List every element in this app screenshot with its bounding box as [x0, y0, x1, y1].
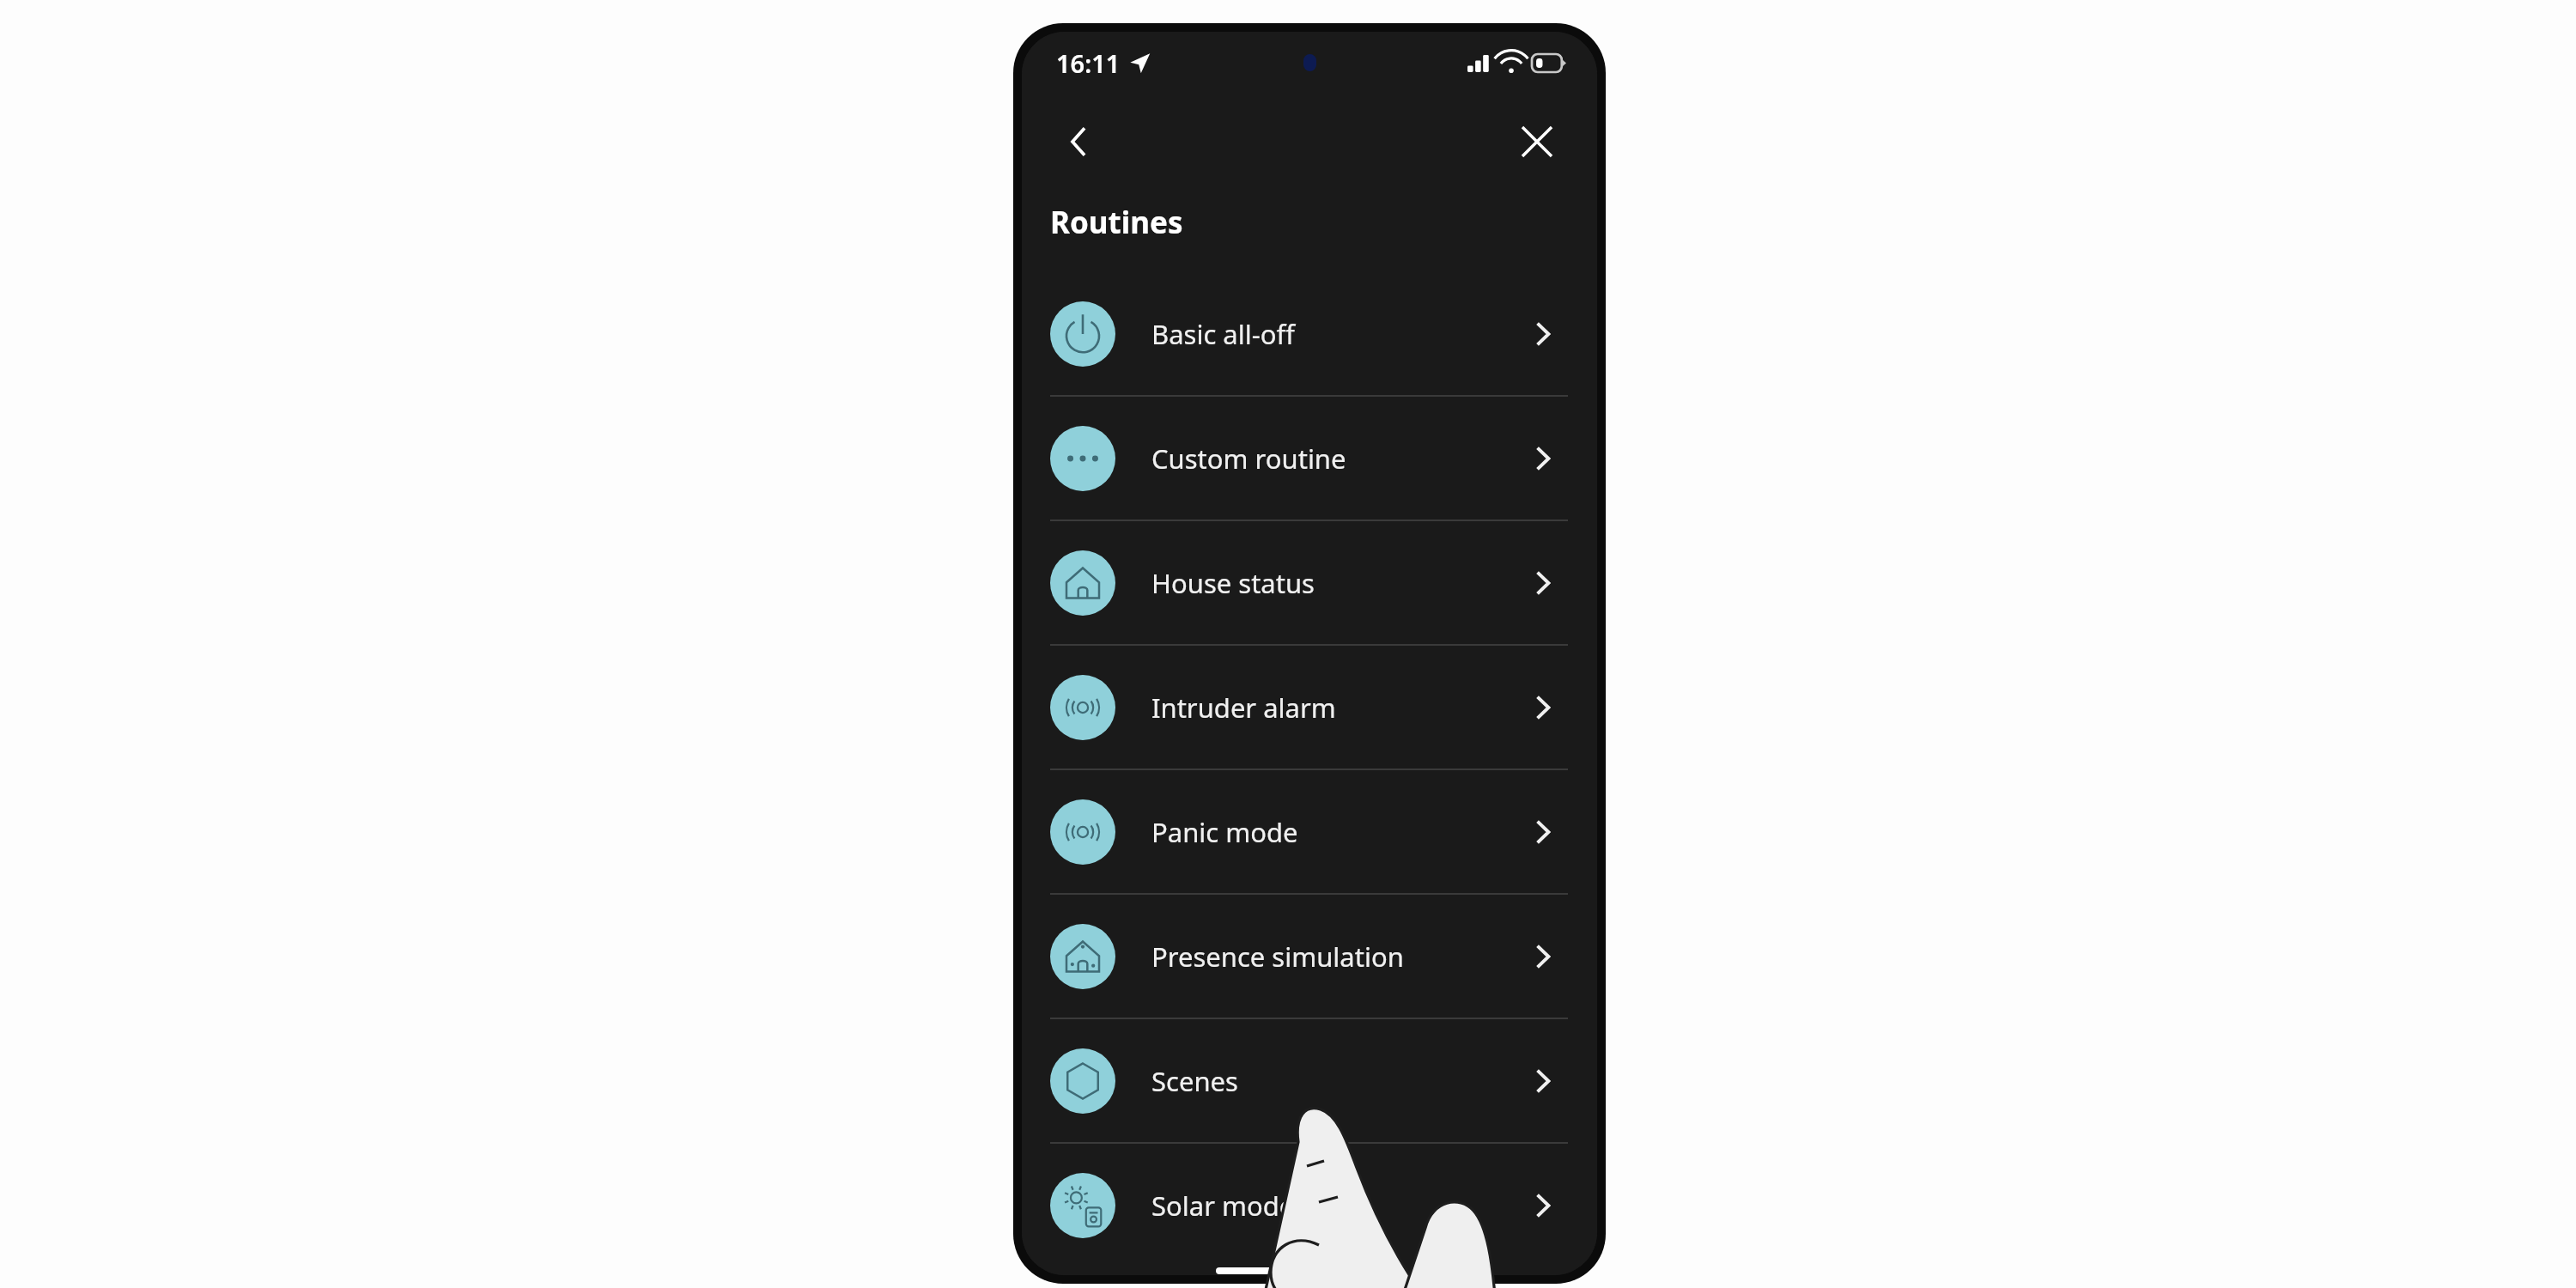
- button[interactable]: Close: [1499, 104, 1575, 179]
- staticText: Intruder alarm: [1151, 690, 1336, 726]
- staticText: House status: [1151, 565, 1315, 601]
- staticText: Custom routine: [1151, 440, 1346, 477]
- staticText: Presence simulation: [1151, 939, 1404, 975]
- staticText: 16:11: [1056, 46, 1121, 80]
- staticText: Basic all-off: [1151, 316, 1295, 352]
- button[interactable]: Basic all-off: [1050, 272, 1575, 395]
- button[interactable]: House status: [1050, 521, 1575, 644]
- button[interactable]: Panic mode: [1050, 770, 1575, 893]
- button[interactable]: Intruder alarm: [1050, 646, 1575, 769]
- button[interactable]: Back: [1041, 104, 1116, 179]
- button[interactable]: Presence simulation: [1050, 895, 1575, 1018]
- staticText: Scenes: [1151, 1063, 1238, 1099]
- button[interactable]: Solar mode: [1050, 1144, 1575, 1267]
- staticText: Routines: [1050, 202, 1183, 243]
- button[interactable]: Scenes: [1050, 1019, 1575, 1142]
- staticText: Panic mode: [1151, 814, 1298, 850]
- staticText: Solar mode: [1151, 1188, 1295, 1224]
- button[interactable]: Custom routine: [1050, 397, 1575, 519]
